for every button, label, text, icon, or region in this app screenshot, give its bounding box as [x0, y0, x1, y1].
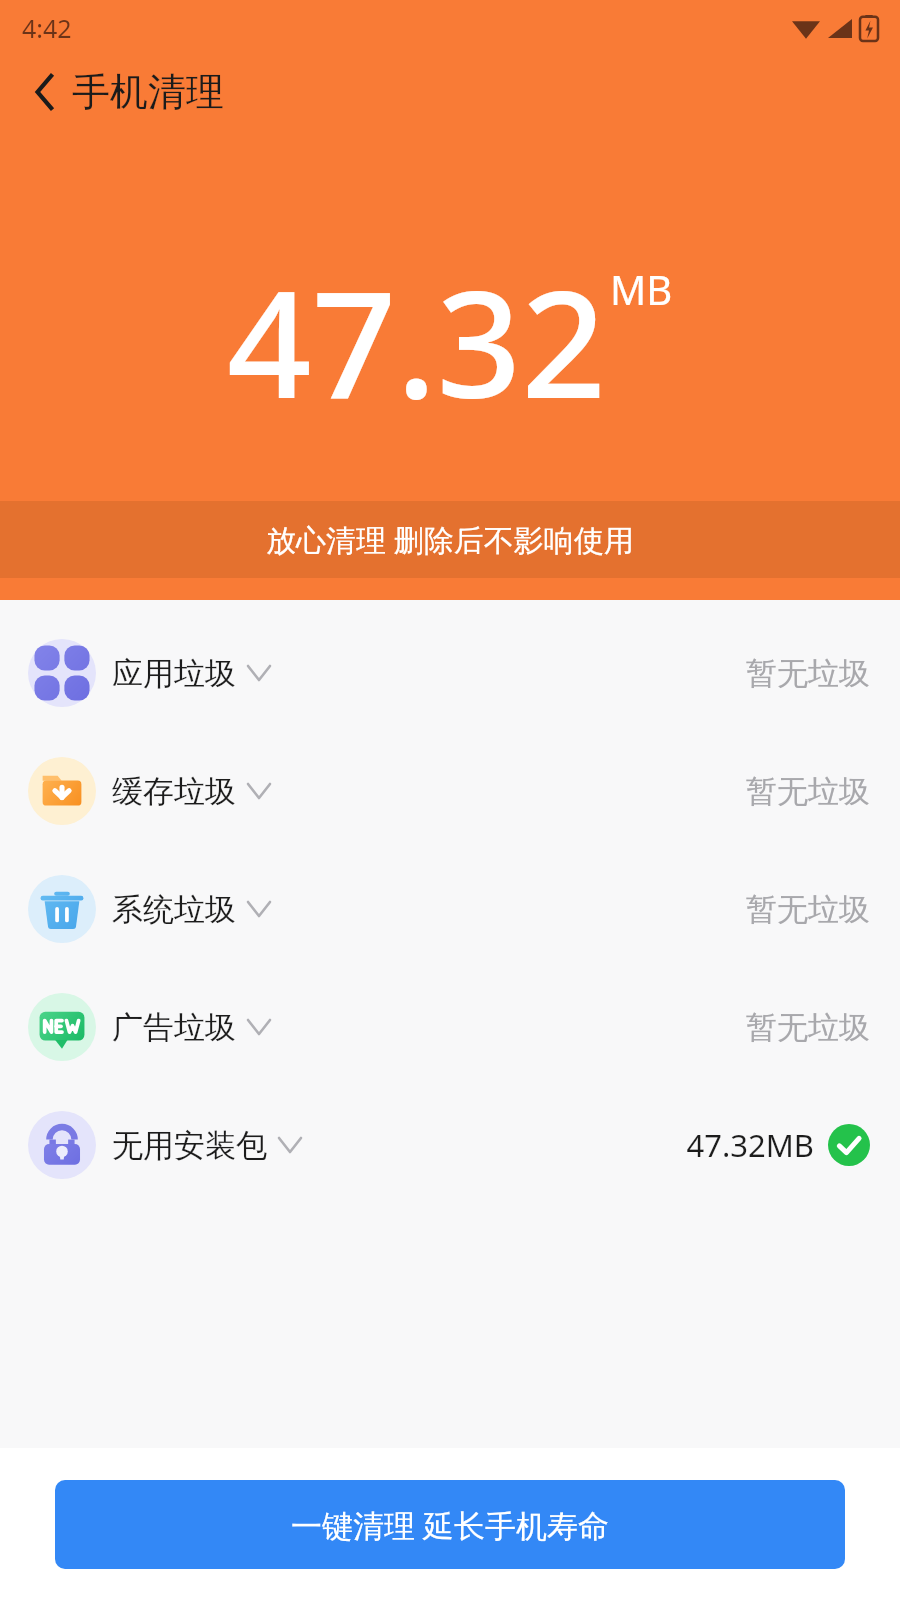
staticText: 应用垃圾: [112, 654, 236, 693]
staticText: 暂无垃圾: [746, 654, 870, 693]
staticText: 4:42: [22, 11, 72, 45]
staticText: MB: [610, 262, 673, 316]
button[interactable]: 缓存垃圾: [0, 732, 900, 850]
staticText: 一键清理 延长手机寿命: [291, 1504, 610, 1546]
staticText: 广告垃圾: [112, 1008, 236, 1047]
button[interactable]: 一键清理 延长手机寿命: [55, 1480, 845, 1569]
button[interactable]: 广告垃圾: [0, 968, 900, 1086]
button[interactable]: Back: [22, 69, 68, 115]
staticText: 47.32MB: [686, 1124, 814, 1166]
staticText: 无用安装包: [112, 1126, 267, 1165]
button[interactable]: 系统垃圾: [0, 850, 900, 968]
button[interactable]: 无用安装包: [0, 1086, 900, 1204]
staticText: 系统垃圾: [112, 890, 236, 929]
staticText: 暂无垃圾: [746, 890, 870, 929]
staticText: 放心清理 删除后不影响使用: [266, 519, 634, 560]
button[interactable]: 应用垃圾: [0, 614, 900, 732]
staticText: 暂无垃圾: [746, 1008, 870, 1047]
staticText: 暂无垃圾: [746, 772, 870, 811]
staticText: 缓存垃圾: [112, 772, 236, 811]
staticText: 手机清理: [72, 68, 224, 116]
staticText: 47.32: [227, 240, 606, 442]
